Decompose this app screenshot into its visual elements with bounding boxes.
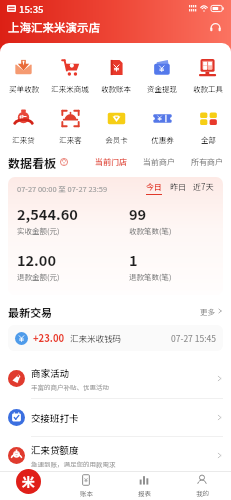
staticText: 米 [22,472,36,491]
button[interactable]: 买单收款 [0,43,47,94]
staticText: 收款笔数(笔) [129,225,172,236]
staticText: 收款工具 [193,83,223,94]
staticText: 退款金额(元) [17,271,60,282]
staticText: 汇来贷额度 [31,443,79,457]
staticText: 12.00 [17,249,56,270]
staticText: 退款笔数(笔) [129,271,172,282]
staticText: 交接班打卡 [31,411,79,425]
button[interactable]: 昨日 [170,181,186,195]
staticText: 实收金额(元) [17,225,60,236]
button[interactable]: 优惠券 [139,94,185,145]
button[interactable]: 报表 [115,471,173,500]
button[interactable]: +23.00 [8,325,223,351]
button[interactable]: 最新交易 [8,304,223,318]
button[interactable]: 客服 [208,20,223,35]
button[interactable]: 资金提现 [139,43,185,94]
button[interactable]: 会员卡 [93,94,139,145]
staticText: 我的 [196,488,209,497]
staticText: 近7天 [193,181,214,193]
button[interactable]: 当前门店 [95,156,127,168]
button[interactable]: 汇来米商城 [47,43,93,94]
button[interactable]: 汇来贷额度 [0,437,231,473]
button[interactable]: 商家活动 [0,358,231,398]
button[interactable]: 首页 [0,471,57,500]
staticText: 会员卡 [105,134,128,145]
button[interactable]: 所有商户 [191,156,223,168]
button[interactable]: 汇来贷 [0,94,47,145]
staticText: 商家活动 [31,366,70,380]
staticText: 07-27 00:00 至 07-27 23:59 [17,183,108,194]
button[interactable]: 近7天 [193,181,214,195]
staticText: 当前商户 [143,156,175,168]
button[interactable]: 当前商户 [143,156,175,168]
staticText: 2,544.60 [17,203,78,224]
staticText: 收款账本 [101,83,131,94]
staticText: 今日 [146,181,162,193]
staticText: 15:35 [19,2,44,16]
staticText: 优惠券 [151,134,174,145]
staticText: 买单收款 [9,83,39,94]
button[interactable]: 今日 [146,181,162,195]
staticText: 当前门店 [95,156,127,168]
staticText: +23.00 [33,331,65,345]
staticText: 资金提现 [147,83,177,94]
staticText: 最新交易 [8,304,52,318]
staticText: 07-27 15:45 [171,332,216,344]
button[interactable]: 收款账本 [93,43,139,94]
staticText: 报表 [138,488,151,497]
button[interactable]: 我的 [173,471,231,500]
staticText: 昨日 [170,181,186,193]
button[interactable]: 收款工具 [185,43,231,94]
staticText: 全部 [201,134,216,145]
staticText: 汇来客 [59,134,82,145]
button[interactable]: 交接班打卡 [0,399,231,436]
staticText: 汇来米商城 [51,83,89,94]
staticText: 1 [129,249,138,270]
staticText: 更多 [200,306,215,317]
staticText: 99 [129,203,147,224]
staticText: 上海汇来米演示店 [8,19,100,36]
button[interactable]: 账本 [57,471,115,500]
staticText: 汇来米收钱码 [70,332,122,344]
button[interactable]: 汇来客 [47,94,93,145]
button[interactable]: 全部 [185,94,231,145]
staticText: 汇来贷 [12,134,35,145]
staticText: 数据看板 [8,154,57,171]
staticText: 所有商户 [191,156,223,168]
staticText: 急速到账，满足您的用款需求 [31,459,116,468]
staticText: 账本 [80,488,93,497]
staticText: 丰富的商户补贴、优惠活动 [31,382,109,391]
